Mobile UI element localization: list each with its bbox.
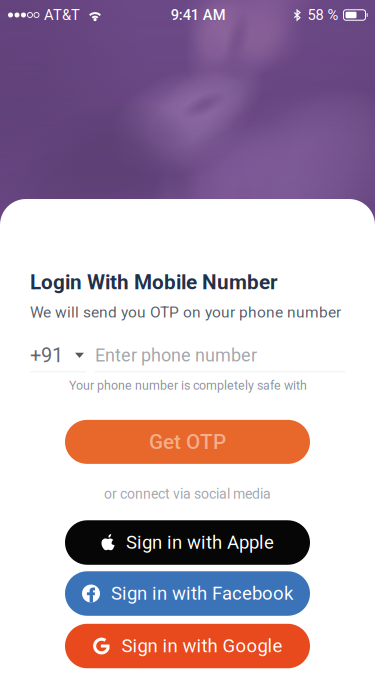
staticText: Sign in with Facebook — [111, 583, 293, 604]
staticText: Your phone number is completely safe wit… — [69, 378, 307, 393]
staticText: Sign in with Apple — [126, 532, 274, 553]
staticText: 9:41 AM — [171, 6, 226, 24]
staticText: We will send you OTP on your phone numbe… — [30, 303, 341, 321]
button[interactable]: Sign in with Apple — [65, 520, 310, 565]
staticText: Enter phone number — [95, 345, 257, 366]
button[interactable]: Get OTP — [65, 420, 310, 464]
staticText: Sign in with Google — [121, 635, 282, 657]
staticText: Get OTP — [149, 430, 226, 454]
button[interactable]: Sign in with Google — [65, 624, 310, 668]
staticText: +91 — [30, 344, 63, 367]
staticText: Login With Mobile Number — [30, 270, 278, 294]
staticText: 58 % — [307, 6, 338, 24]
staticText: or connect via social media — [104, 486, 271, 502]
button[interactable]: Sign in with Facebook — [65, 571, 310, 616]
staticText: AT&T — [44, 6, 80, 24]
